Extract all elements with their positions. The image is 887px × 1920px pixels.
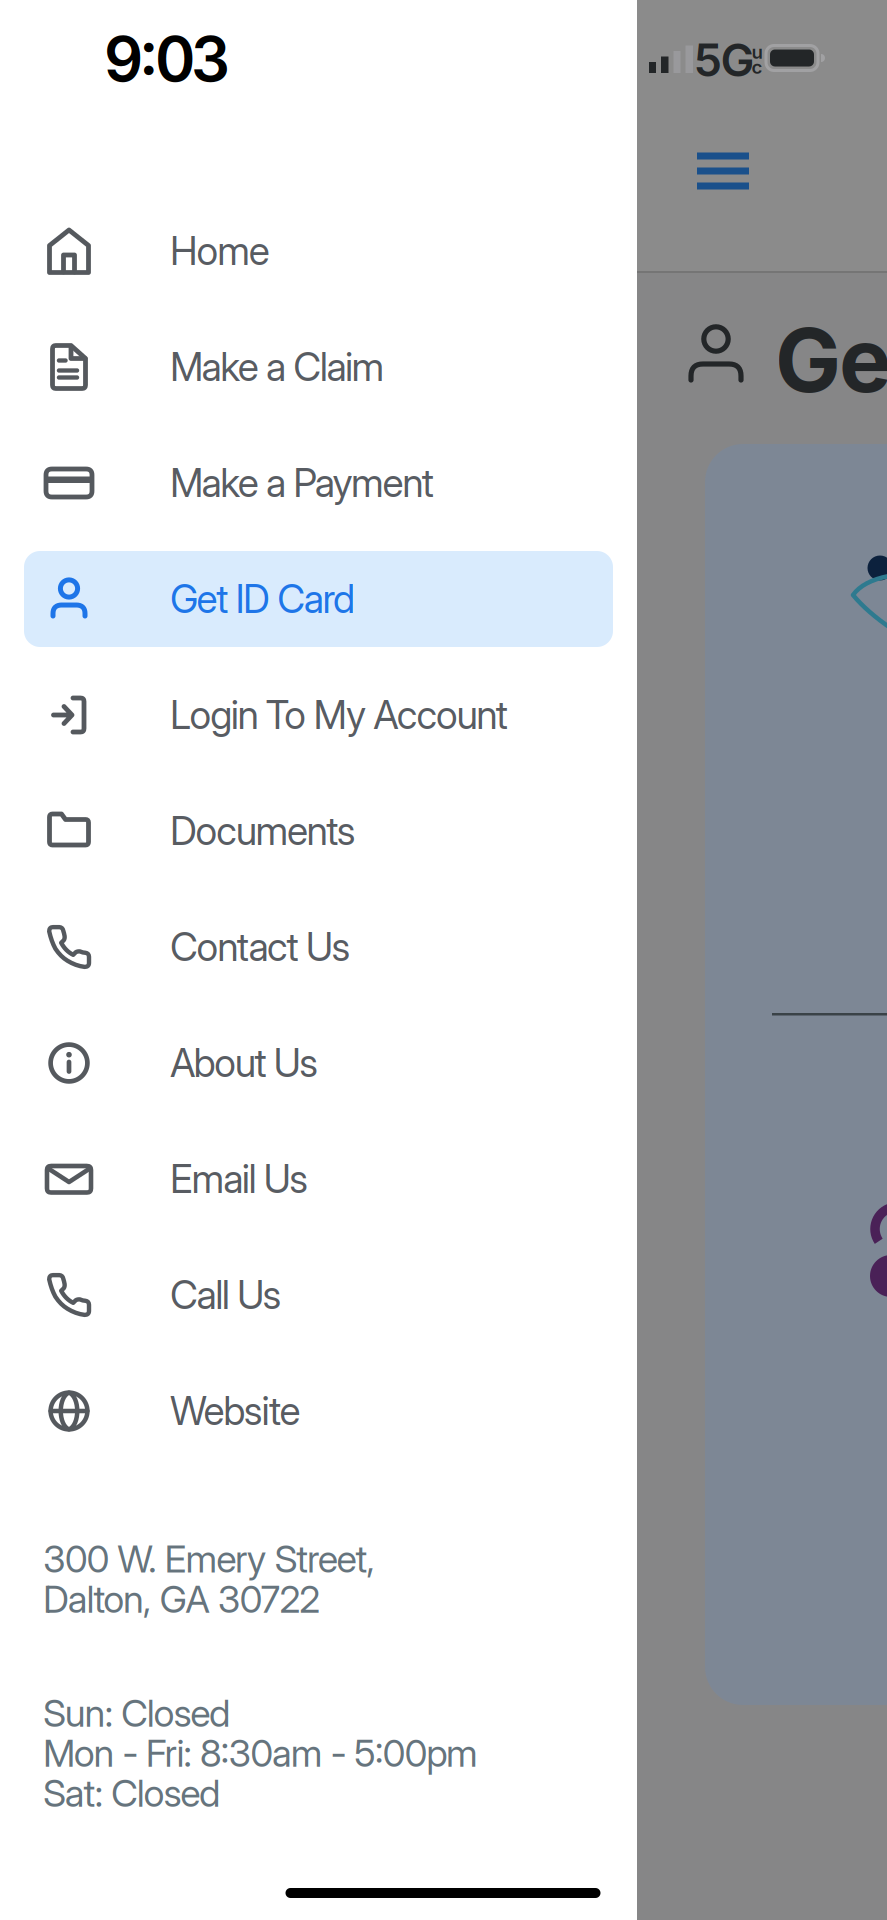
button[interactable]: Login To My Account [24, 667, 613, 763]
staticText: Sun: Closed Mon - Fri: 8:30am - 5:00pm S… [43, 1691, 478, 1815]
button[interactable]: About Us [24, 1015, 613, 1111]
staticText: c [751, 56, 762, 78]
button[interactable]: Website [24, 1363, 613, 1459]
staticText: Call Us [170, 1272, 282, 1318]
button[interactable]: Email Us [24, 1131, 613, 1227]
button[interactable]: Make a Claim [24, 319, 613, 415]
staticText: Get ID Card [170, 576, 355, 622]
button[interactable]: Documents [24, 783, 613, 879]
staticText: 5G [693, 33, 754, 87]
staticText: Make a Payment [170, 460, 434, 506]
staticText: Login To My Account [170, 692, 508, 738]
button[interactable]: Get ID Card [24, 551, 613, 647]
staticText: 300 W. Emery Street, Dalton, GA 30722 [43, 1537, 375, 1621]
button[interactable]: Contact Us [24, 899, 613, 995]
staticText: Website [170, 1388, 301, 1434]
staticText: Documents [170, 808, 356, 854]
staticText: Email Us [170, 1156, 308, 1202]
staticText: Get ID Card [775, 308, 887, 412]
staticText: About Us [170, 1040, 318, 1086]
staticText: Make a Claim [170, 344, 385, 390]
staticText: Home [170, 228, 270, 274]
button[interactable]: Make a Payment [24, 435, 613, 531]
staticText: u [751, 41, 762, 63]
button[interactable]: Home [24, 203, 613, 299]
staticText: Contact Us [170, 924, 350, 970]
button[interactable]: Call Us [24, 1247, 613, 1343]
staticText: 9:03 [104, 23, 230, 95]
